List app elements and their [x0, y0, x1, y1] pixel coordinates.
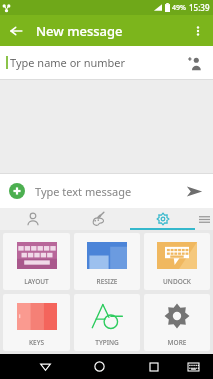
button[interactable]: MORE	[144, 294, 210, 351]
button[interactable]: KEYS	[3, 294, 70, 351]
button[interactable]: Add attachment	[6, 180, 28, 202]
staticText: 49%	[172, 3, 186, 13]
button[interactable]: Add contact	[181, 50, 207, 76]
staticText: LAYOUT	[3, 277, 70, 286]
button[interactable]: TYPING	[74, 294, 140, 351]
staticText: RESIZE	[74, 277, 140, 286]
button[interactable]: Profile	[0, 208, 65, 230]
staticText: UNDOCK	[144, 277, 210, 286]
staticText: MORE	[144, 338, 210, 347]
button[interactable]: Back	[0, 15, 31, 46]
button[interactable]: Send	[181, 178, 207, 204]
button[interactable]: LAYOUT	[3, 233, 70, 290]
button[interactable]: More options	[182, 15, 213, 46]
button[interactable]: UNDOCK	[144, 233, 210, 290]
staticText: Type name or number	[10, 55, 126, 70]
staticText: TYPING	[74, 338, 140, 347]
staticText: KEYS	[3, 338, 70, 347]
button[interactable]: RESIZE	[74, 233, 140, 290]
button[interactable]: Home	[87, 354, 112, 379]
button[interactable]: Back	[33, 354, 58, 379]
staticText: 15:39	[189, 2, 210, 13]
button[interactable]: Recents	[141, 354, 166, 379]
button[interactable]: Menu	[195, 208, 213, 230]
button[interactable]: Themes	[65, 208, 130, 230]
staticText: Type text message	[35, 184, 132, 199]
staticText: New message	[36, 22, 123, 40]
button[interactable]: Settings	[130, 208, 195, 230]
button[interactable]: Switch keyboard	[182, 356, 204, 378]
